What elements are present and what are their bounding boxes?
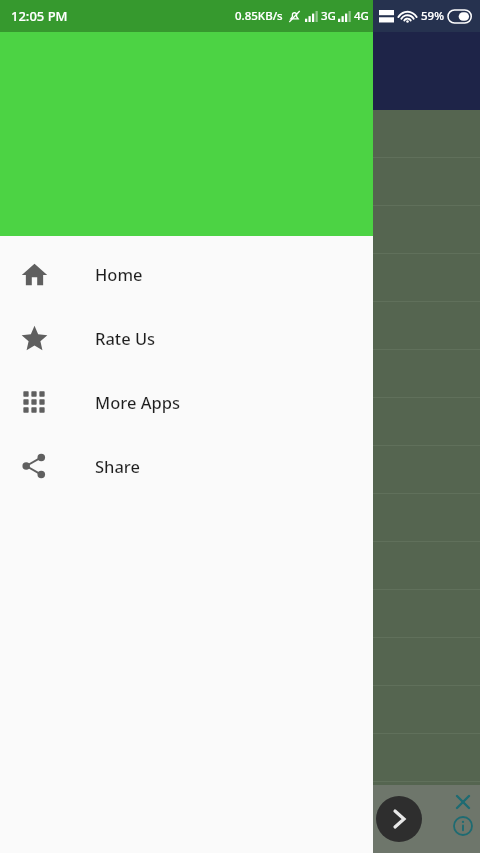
button[interactable] bbox=[0, 158, 480, 206]
staticText: 12:05 PM bbox=[11, 7, 68, 25]
button[interactable] bbox=[0, 686, 480, 734]
button[interactable]: Rate Us bbox=[0, 306, 373, 370]
button[interactable]: More Apps bbox=[0, 370, 373, 434]
staticText: More Apps bbox=[95, 391, 180, 413]
staticText: Home bbox=[95, 263, 143, 285]
staticText: 0.85KB/s bbox=[235, 8, 283, 24]
button[interactable] bbox=[0, 542, 480, 590]
button[interactable]: Share bbox=[0, 434, 373, 498]
button[interactable]: Close ad bbox=[452, 791, 474, 813]
button[interactable] bbox=[0, 782, 480, 830]
staticText: 59% bbox=[421, 8, 444, 24]
button[interactable] bbox=[0, 350, 480, 398]
button[interactable] bbox=[0, 398, 480, 446]
button[interactable] bbox=[0, 110, 480, 158]
staticText: 3G bbox=[321, 8, 336, 24]
button[interactable] bbox=[0, 206, 480, 254]
staticText: 4G bbox=[354, 8, 369, 24]
staticText: Share bbox=[95, 455, 140, 477]
button[interactable] bbox=[0, 494, 480, 542]
button[interactable]: Home bbox=[0, 242, 373, 306]
staticText: Rate Us bbox=[95, 327, 156, 349]
button[interactable] bbox=[0, 734, 480, 782]
button[interactable] bbox=[0, 446, 480, 494]
button[interactable] bbox=[0, 590, 480, 638]
button[interactable]: Open ad bbox=[376, 796, 422, 842]
button[interactable]: Ad information bbox=[452, 815, 474, 837]
button[interactable] bbox=[0, 302, 480, 350]
button[interactable] bbox=[0, 638, 480, 686]
button[interactable] bbox=[0, 254, 480, 302]
